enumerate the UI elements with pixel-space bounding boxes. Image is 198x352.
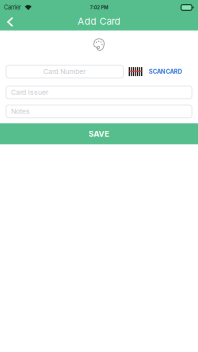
staticText: Card Issuer [11,88,49,96]
staticText: 7:02 PM [90,5,108,10]
staticText: SCAN CARD [149,68,182,75]
staticText: SAVE [88,129,109,138]
staticText: Add Card [77,16,120,27]
staticText: Card Number [43,67,86,76]
staticText: Notes [11,107,30,115]
button[interactable]: Back [0,14,22,30]
button[interactable]: SAVE [0,123,198,144]
button[interactable]: SCAN CARD [124,66,192,78]
staticText: Carrier [4,4,21,11]
